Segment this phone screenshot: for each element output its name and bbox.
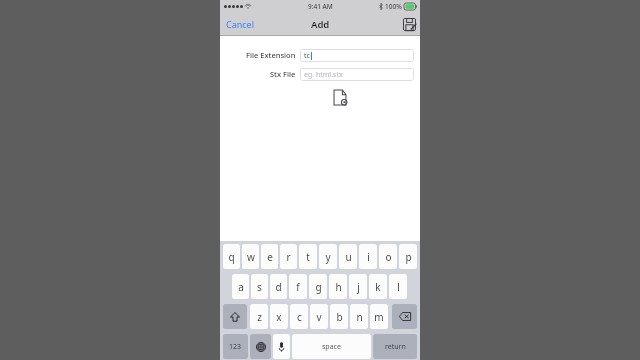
staticText: f: [296, 280, 300, 294]
staticText: Add: [311, 18, 330, 31]
staticText: u: [345, 250, 352, 264]
button[interactable]: u: [339, 244, 357, 269]
button[interactable]: q: [223, 244, 240, 269]
button[interactable]: r: [280, 244, 297, 269]
staticText: a: [238, 280, 244, 294]
staticText: x: [276, 310, 282, 324]
staticText: tc: [304, 51, 310, 61]
button[interactable]: s: [251, 274, 268, 299]
staticText: t: [306, 250, 310, 264]
button[interactable]: y: [319, 244, 337, 269]
staticText: y: [325, 250, 331, 264]
staticText: space: [322, 342, 341, 352]
staticText: c: [297, 310, 302, 324]
button[interactable]: k: [369, 274, 387, 299]
staticText: b: [336, 310, 343, 324]
staticText: z: [257, 310, 262, 324]
button[interactable]: Save: [398, 12, 420, 36]
staticText: Stx File: [270, 69, 296, 79]
button[interactable]: e: [261, 244, 278, 269]
button[interactable]: w: [242, 244, 259, 269]
button[interactable]: c: [290, 304, 308, 329]
staticText: n: [356, 310, 363, 324]
button[interactable]: p: [399, 244, 417, 269]
staticText: 9:41 AM: [308, 2, 333, 11]
staticText: j: [357, 280, 360, 294]
staticText: 100%: [385, 2, 402, 11]
staticText: eg. html.stx: [304, 70, 343, 80]
staticText: e: [267, 250, 273, 264]
button[interactable]: n: [350, 304, 368, 329]
button[interactable]: b: [330, 304, 348, 329]
staticText: s: [257, 280, 262, 294]
button[interactable]: l: [389, 274, 407, 299]
button[interactable]: t: [299, 244, 317, 269]
staticText: o: [385, 250, 392, 264]
button[interactable]: o: [379, 244, 397, 269]
button[interactable]: space: [292, 334, 371, 359]
button[interactable]: Pick file: [331, 87, 348, 107]
staticText: 123: [229, 342, 242, 352]
staticText: k: [375, 280, 381, 294]
button[interactable]: h: [329, 274, 347, 299]
button[interactable]: return: [373, 334, 417, 359]
button[interactable]: Shift: [223, 304, 247, 329]
button[interactable]: z: [250, 304, 268, 329]
staticText: m: [374, 310, 384, 324]
staticText: g: [315, 280, 322, 294]
button[interactable]: i: [359, 244, 377, 269]
button[interactable]: j: [349, 274, 367, 299]
button[interactable]: 123: [223, 334, 248, 359]
button[interactable]: v: [310, 304, 328, 329]
staticText: q: [228, 250, 235, 264]
button[interactable]: a: [232, 274, 249, 299]
staticText: p: [405, 250, 412, 264]
button[interactable]: m: [370, 304, 388, 329]
button[interactable]: x: [270, 304, 288, 329]
button[interactable]: eg. html.stx: [300, 68, 414, 81]
staticText: File Extension: [246, 50, 296, 60]
button[interactable]: Dictate: [273, 334, 290, 359]
button[interactable]: d: [270, 274, 287, 299]
staticText: r: [286, 250, 291, 264]
staticText: Cancel: [226, 18, 255, 30]
button[interactable]: Switch keyboard: [250, 334, 271, 359]
button[interactable]: g: [309, 274, 327, 299]
staticText: d: [275, 280, 282, 294]
staticText: h: [335, 280, 342, 294]
button[interactable]: Backspace: [392, 304, 417, 329]
staticText: w: [247, 250, 255, 264]
staticText: l: [397, 280, 400, 294]
staticText: v: [316, 310, 322, 324]
button[interactable]: f: [289, 274, 307, 299]
button[interactable]: Cancel: [220, 12, 261, 36]
button[interactable]: tc: [300, 49, 414, 62]
staticText: i: [367, 250, 370, 264]
staticText: return: [385, 342, 406, 352]
